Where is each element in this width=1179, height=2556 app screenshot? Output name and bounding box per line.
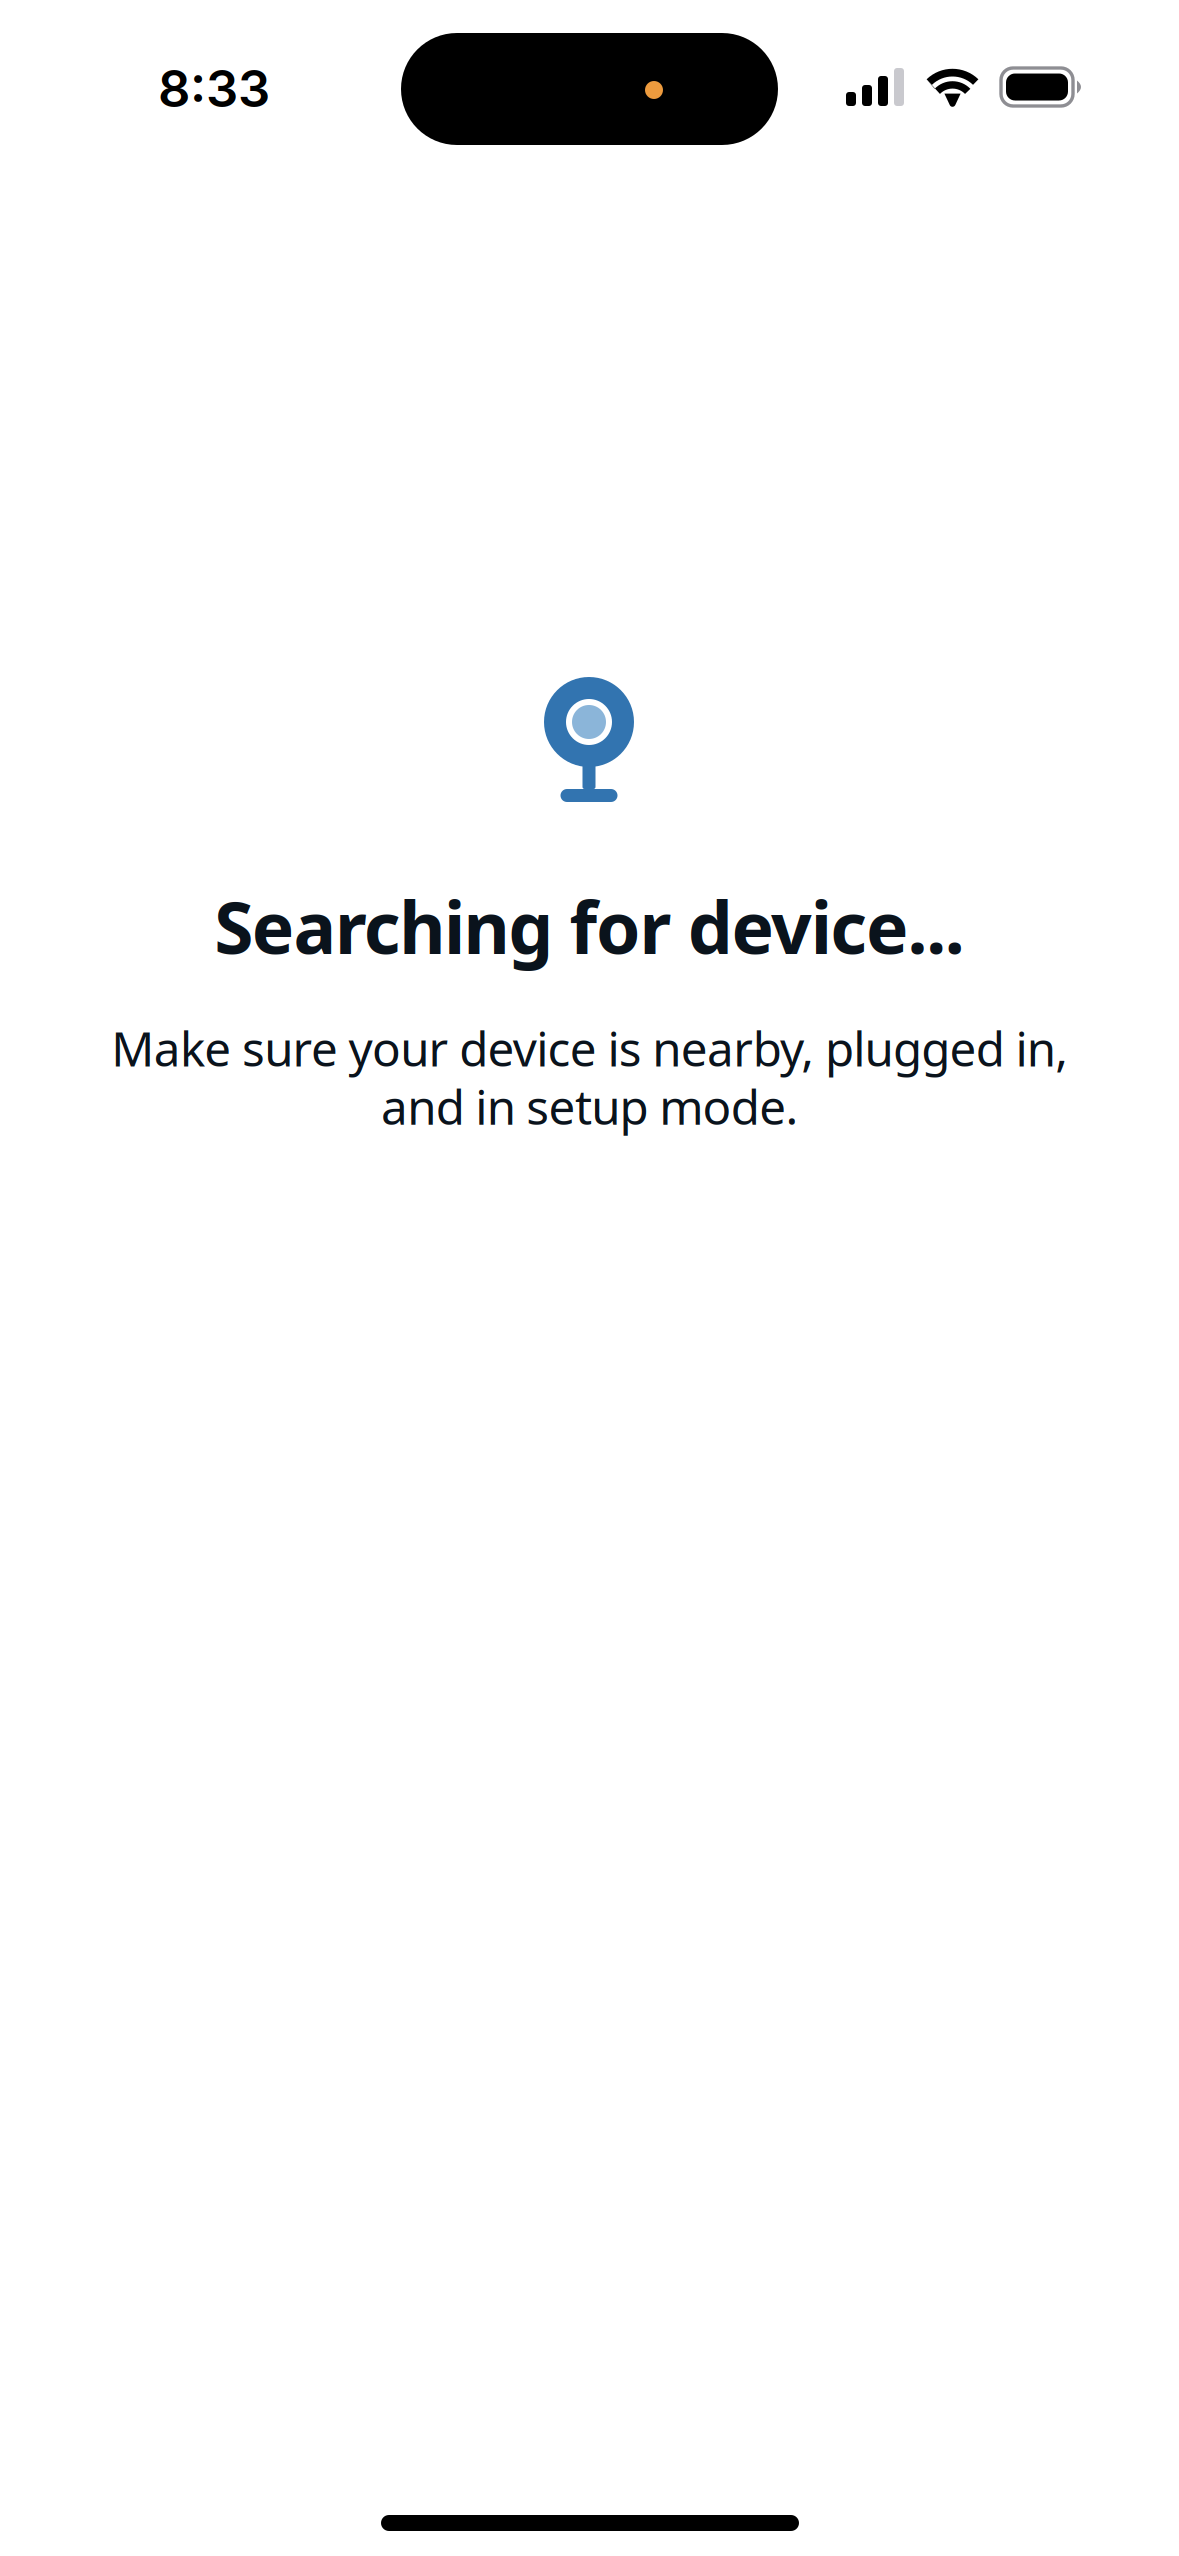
staticText: Make sure your device is nearby, plugged…	[111, 1019, 1068, 1135]
staticText: Searching for device...	[214, 878, 965, 975]
staticText: 8:33	[158, 58, 270, 119]
